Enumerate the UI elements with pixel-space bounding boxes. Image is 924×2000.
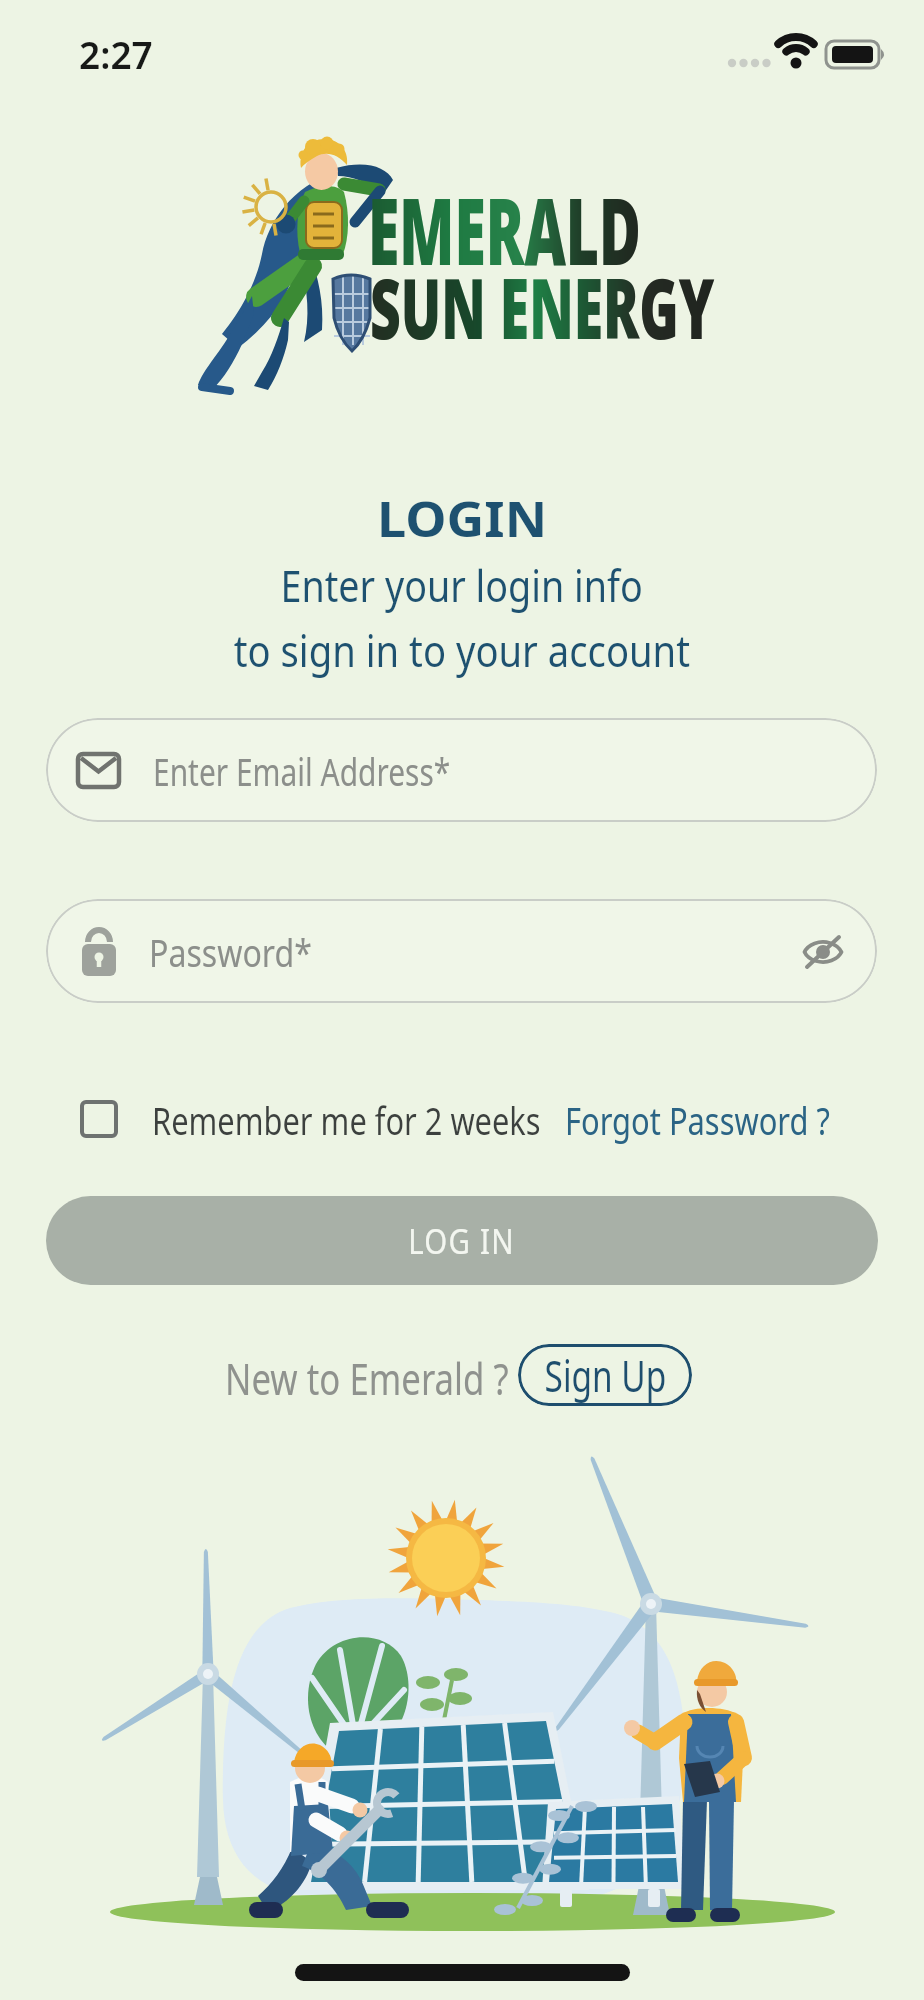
staticText: 2:27: [79, 29, 153, 79]
button[interactable]: Sign Up: [518, 1344, 692, 1406]
staticText: New to Emerald ?: [225, 1349, 509, 1408]
staticText: Sign Up: [545, 1346, 666, 1405]
staticText: Enter Email Address*: [153, 744, 451, 797]
staticText: LOGIN: [377, 486, 548, 551]
button[interactable]: [80, 1100, 118, 1138]
staticText: Remember me for 2 weeks: [152, 1093, 541, 1146]
staticText: Enter your login info: [280, 555, 643, 615]
staticText: EMERALD: [368, 167, 641, 292]
staticText: to sign in to your account: [234, 620, 690, 680]
button[interactable]: Enter Email Address*: [46, 718, 877, 822]
staticText: SUN ENERGY: [370, 250, 714, 363]
staticText: LOG IN: [408, 1217, 516, 1265]
button[interactable]: Password*: [46, 899, 877, 1003]
button[interactable]: Forgot Password ?: [565, 1093, 900, 1146]
button[interactable]: LOG IN: [46, 1196, 878, 1285]
staticText: Password*: [149, 925, 312, 978]
